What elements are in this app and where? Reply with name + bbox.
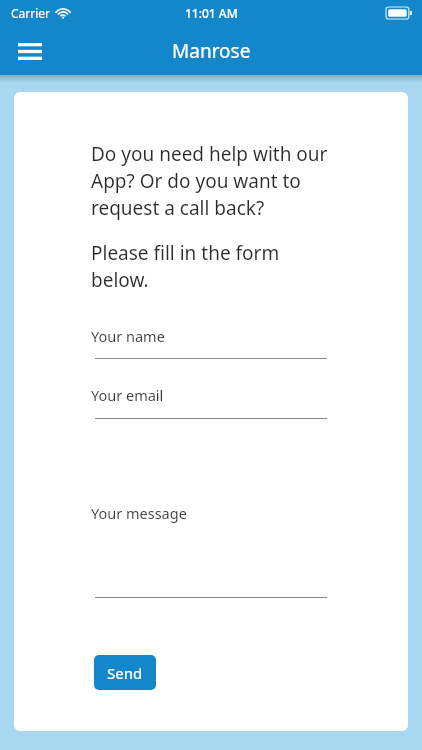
staticText: Do you need help with our App? Or do you… [91,141,336,221]
staticText: Your message [91,503,187,523]
button[interactable]: Send [94,655,156,690]
staticText: Manrose [172,38,251,64]
staticText: Your email [91,385,164,405]
button[interactable]: Open navigation menu [8,29,52,73]
staticText: 11:01 AM [185,5,238,21]
staticText: Your name [91,326,165,346]
staticText: Please fill in the form below. [91,240,321,293]
staticText: Send [107,663,143,683]
staticText: Carrier [11,5,51,21]
